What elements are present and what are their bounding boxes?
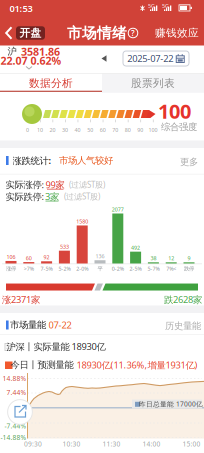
staticText: 38 — [150, 255, 156, 262]
staticText: 3家 — [45, 190, 59, 203]
staticText: 92 — [44, 254, 50, 261]
staticText: 90 — [137, 126, 143, 134]
staticText: 涨跌统计: — [12, 154, 51, 167]
staticText: 综合强度 — [161, 121, 197, 133]
staticText: 5-2% — [58, 265, 70, 272]
staticText: 492 — [131, 244, 140, 251]
staticText: 涨停 — [6, 265, 16, 272]
staticText: 实际跌停: — [5, 190, 44, 203]
staticText: 14:00 — [142, 440, 160, 448]
staticText: 100 — [148, 126, 157, 134]
staticText: 5G — [162, 2, 169, 10]
staticText: 3581.86 — [21, 44, 60, 59]
staticText: 50 — [87, 126, 93, 134]
staticText: 533 — [60, 243, 69, 250]
staticText: 更多 — [180, 156, 198, 168]
staticText: 12 — [168, 255, 174, 262]
staticText: 136 — [95, 253, 104, 260]
staticText: 0 — [26, 126, 29, 134]
staticText: 5G — [148, 2, 155, 10]
staticText: 07-22 — [48, 319, 71, 331]
staticText: 平 — [97, 265, 102, 272]
staticText: 昨日总量能 17000亿 — [139, 400, 203, 408]
staticText: 数据分析 — [29, 77, 73, 90]
button[interactable]: 2025-07-22 — [123, 51, 189, 66]
staticText: 30 — [62, 126, 68, 134]
staticText: 0-2% — [112, 265, 124, 272]
staticText: 01:53 — [9, 2, 32, 15]
button[interactable]: ? — [128, 28, 138, 38]
staticText: 2-0% — [76, 265, 88, 272]
staticText: 18930亿(11.36%,增量1931亿) — [76, 359, 197, 371]
button[interactable]: 赚钱效应 — [155, 26, 199, 39]
staticText: 09:30 — [24, 440, 42, 448]
staticText: 市场量能 — [10, 319, 46, 331]
staticText: 11:30 — [102, 440, 120, 448]
staticText: -7.44% — [4, 422, 26, 430]
staticText: -14.88% — [0, 433, 26, 442]
button[interactable]: 数据分析 — [0, 74, 102, 93]
staticText: 沪深丨实际量能 18930亿 — [6, 340, 105, 353]
staticText: 市场人气较好 — [59, 155, 113, 166]
staticText: 跌2628家 — [164, 293, 202, 306]
staticText: 22.07 0.62% — [0, 53, 61, 68]
staticText: 2025-07-22 — [127, 52, 173, 65]
staticText: 99家 — [45, 178, 64, 191]
staticText: 60 — [100, 126, 106, 134]
staticText: (过滤ST股) — [69, 179, 105, 190]
staticText: (过滤ST股) — [64, 191, 100, 202]
staticText: 100 — [158, 98, 191, 124]
button[interactable]: 沪 — [2, 45, 62, 71]
staticText: 9 — [187, 255, 190, 262]
staticText: ? — [131, 28, 135, 38]
staticText: 股票列表 — [131, 77, 175, 90]
staticText: 7.44% — [6, 388, 26, 397]
staticText: 7-5% — [41, 265, 53, 272]
staticText: 今日丨预测量能 — [10, 359, 73, 371]
staticText: 跌停 — [184, 265, 194, 272]
staticText: 历史量能 — [165, 320, 201, 332]
staticText: 沪 — [7, 46, 16, 57]
staticText: 赚钱效应 — [155, 26, 199, 39]
staticText: 10:30 — [62, 440, 80, 448]
staticText: 7%< — [166, 265, 176, 272]
button[interactable]: 历史量能 — [165, 320, 201, 332]
staticText: 开盘 — [19, 26, 41, 39]
staticText: 106 — [6, 253, 15, 260]
staticText: 2077 — [112, 206, 124, 213]
staticText: 实际涨停: — [5, 178, 44, 191]
staticText: 10 — [37, 126, 43, 134]
staticText: 60 — [26, 254, 32, 262]
staticText: >7% — [24, 265, 34, 272]
staticText: 80 — [125, 126, 131, 134]
staticText: 涨2371家 — [2, 293, 40, 306]
staticText: 40 — [75, 126, 81, 134]
button[interactable] — [101, 55, 107, 62]
button[interactable]: 更多 — [180, 156, 198, 168]
staticText: 70 — [112, 126, 118, 134]
staticText: 20 — [49, 126, 55, 134]
button[interactable]: 股票列表 — [102, 74, 204, 93]
staticText: 5-7% — [147, 265, 159, 272]
staticText: 市场情绪 — [67, 24, 127, 42]
button[interactable]: 开盘 — [5, 26, 45, 40]
staticText: 15:00 — [182, 440, 200, 448]
staticText: 14.88% — [2, 374, 26, 383]
staticText: 2-5% — [130, 265, 142, 272]
button[interactable] — [7, 399, 33, 425]
staticText: 1580 — [76, 218, 88, 225]
